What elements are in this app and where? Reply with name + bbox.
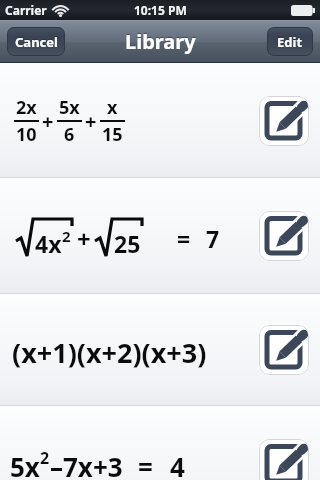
button[interactable]: (x+1)(x+2)(x+3) — [0, 294, 320, 406]
staticText: 10 — [16, 122, 37, 147]
staticText: + — [77, 222, 91, 255]
staticText: = — [177, 223, 191, 254]
staticText: 10:15 PM — [134, 2, 187, 18]
staticText: –7x+3 — [50, 449, 123, 480]
staticText: 7 — [206, 223, 220, 254]
button[interactable]: Cancel — [7, 27, 65, 56]
staticText: 6 — [64, 122, 75, 147]
button[interactable] — [259, 211, 309, 261]
staticText: 5x — [59, 95, 80, 120]
button[interactable] — [259, 439, 309, 480]
staticText: 5x — [10, 449, 40, 480]
staticText: Edit — [277, 33, 303, 51]
staticText: + — [85, 108, 97, 135]
staticText: (x+1)(x+2)(x+3) — [12, 334, 207, 371]
button[interactable] — [259, 96, 309, 146]
button[interactable] — [259, 325, 309, 375]
staticText: Cancel — [15, 33, 58, 51]
staticText: 4x — [35, 228, 62, 259]
button[interactable]: Edit — [267, 27, 313, 56]
staticText: 2 — [62, 226, 71, 246]
button[interactable]: 4x — [0, 178, 320, 294]
staticText: = — [138, 449, 153, 480]
staticText: Library — [125, 28, 196, 55]
staticText: 15 — [102, 122, 123, 147]
staticText: Carrier — [5, 2, 47, 18]
staticText: 4 — [170, 449, 185, 480]
staticText: x — [107, 95, 118, 120]
staticText: 2x — [16, 95, 37, 120]
staticText: + — [42, 108, 54, 135]
staticText: 2 — [40, 447, 50, 469]
button[interactable]: 2x — [0, 63, 320, 178]
button[interactable]: 5x — [0, 406, 320, 480]
staticText: 25 — [114, 228, 141, 259]
